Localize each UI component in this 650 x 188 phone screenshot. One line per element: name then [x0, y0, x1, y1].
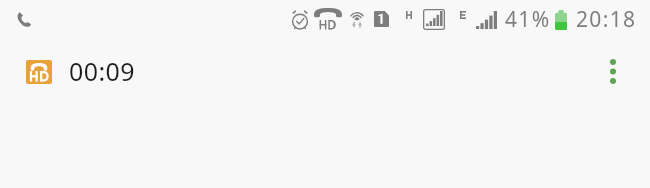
staticText: 00:09 — [69, 54, 135, 88]
staticText: 41% — [505, 5, 551, 34]
button[interactable]: More options — [590, 48, 638, 96]
other: Ongoing call — [15, 11, 33, 29]
staticText: 20:18 — [576, 5, 637, 34]
